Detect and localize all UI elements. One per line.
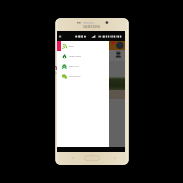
staticText: Latest News: [69, 55, 81, 58]
staticText: SAMSUNG: [83, 25, 101, 29]
staticText: Blog: [69, 45, 74, 48]
button[interactable]: Chat Forum: [57, 71, 109, 81]
staticText: mediaplate: [55, 63, 88, 72]
staticText: by author: [55, 71, 65, 75]
button[interactable]: Latest News: [57, 51, 109, 61]
button[interactable]: Jumia List: [57, 61, 109, 71]
staticText: Jumia List: [69, 65, 79, 68]
button[interactable]: Blog: [57, 41, 109, 51]
staticText: Chat Forum: [69, 75, 81, 78]
